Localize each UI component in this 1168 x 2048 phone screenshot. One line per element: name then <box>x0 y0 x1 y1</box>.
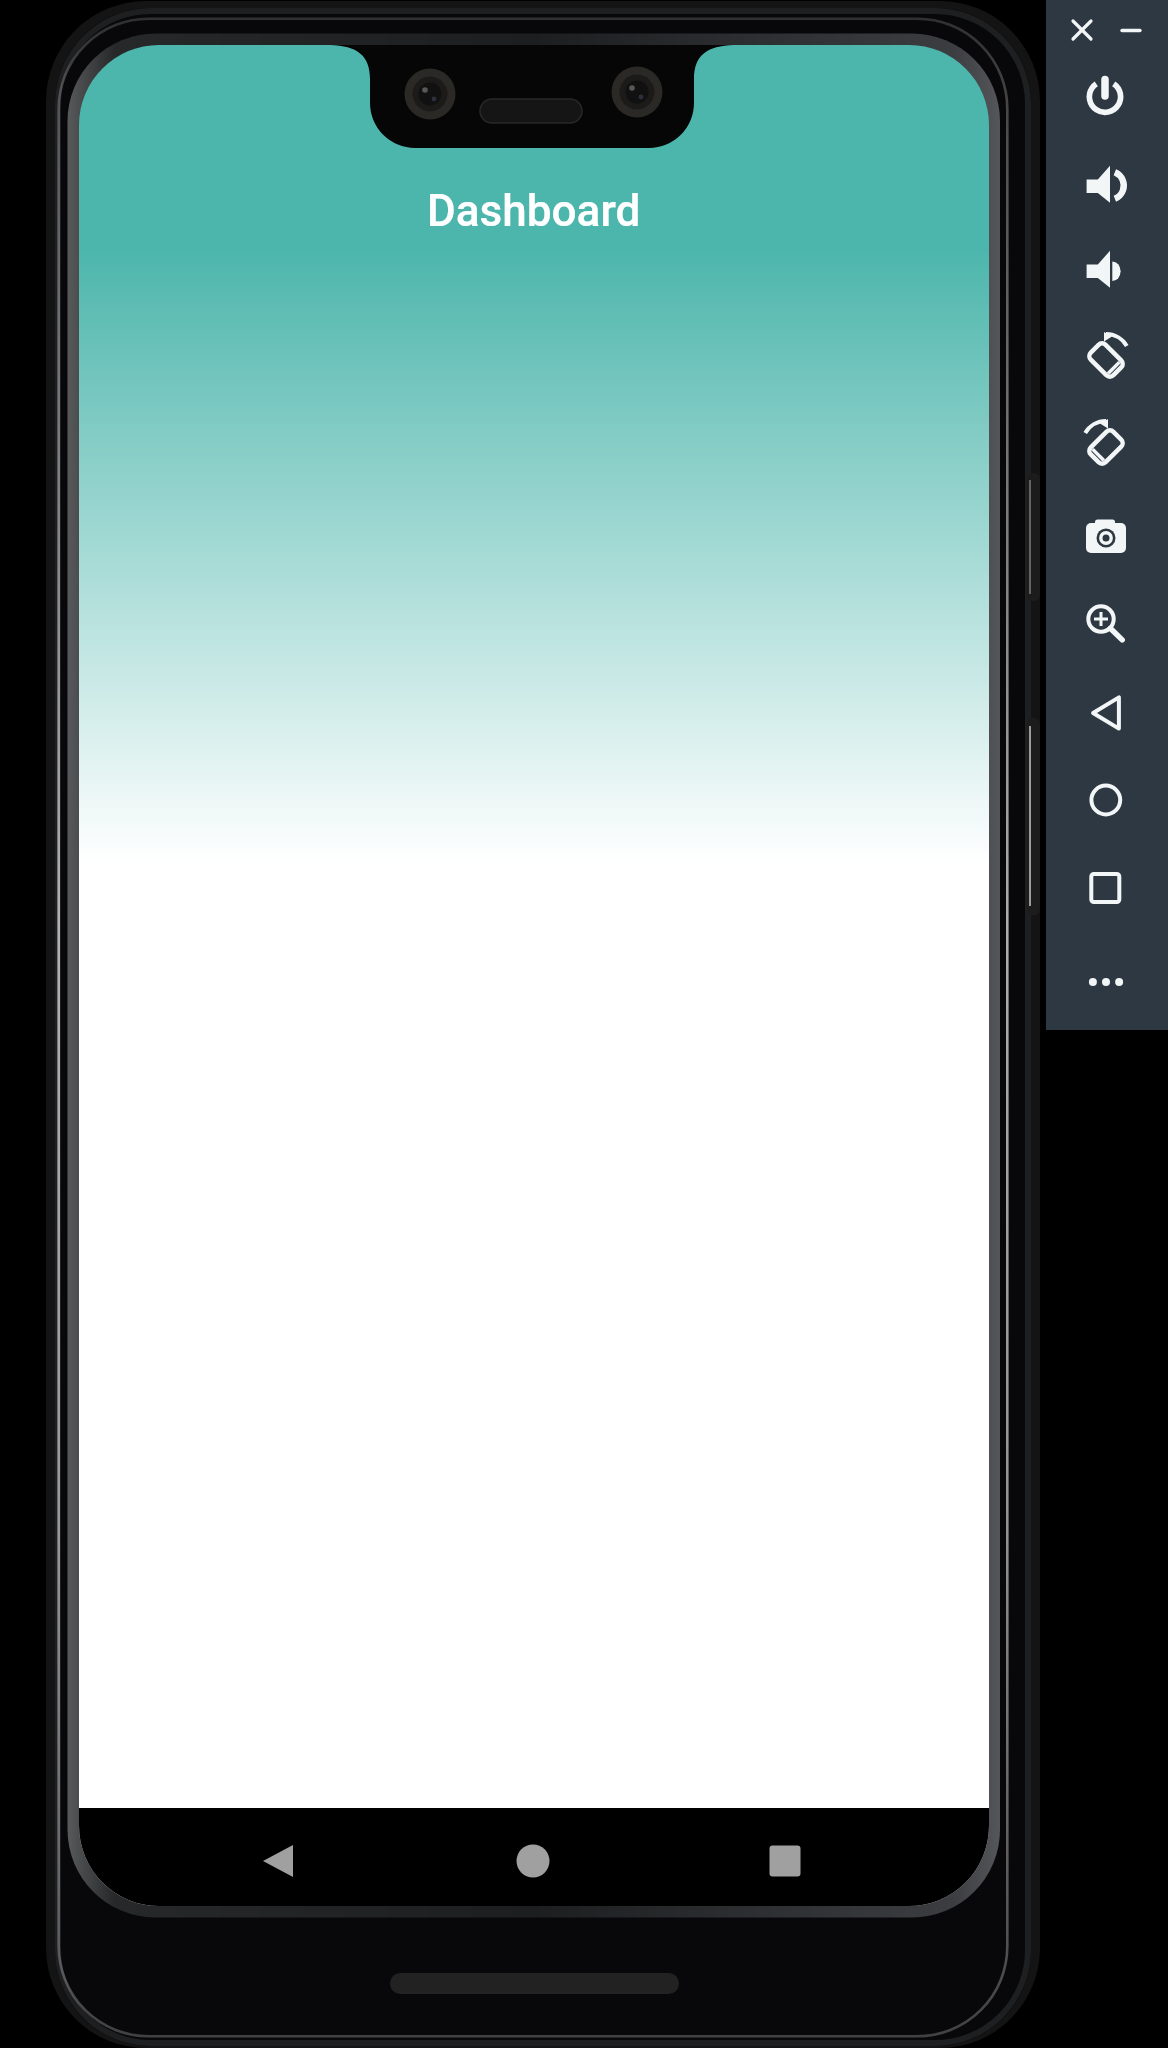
button[interactable] <box>1078 507 1134 563</box>
button[interactable] <box>1078 954 1134 1010</box>
button[interactable] <box>1117 16 1145 44</box>
button[interactable] <box>1078 417 1134 473</box>
button[interactable] <box>1078 591 1134 647</box>
button[interactable] <box>1078 158 1134 214</box>
button[interactable] <box>1078 330 1134 386</box>
staticText: Dashboard <box>427 185 641 237</box>
button[interactable] <box>1078 860 1134 916</box>
button[interactable] <box>1078 772 1134 828</box>
button[interactable] <box>1078 66 1134 122</box>
button[interactable] <box>1078 243 1134 299</box>
button[interactable] <box>1068 16 1096 44</box>
button[interactable] <box>757 1833 813 1889</box>
button[interactable] <box>1078 685 1134 741</box>
button[interactable] <box>505 1833 561 1889</box>
button[interactable] <box>250 1833 306 1889</box>
